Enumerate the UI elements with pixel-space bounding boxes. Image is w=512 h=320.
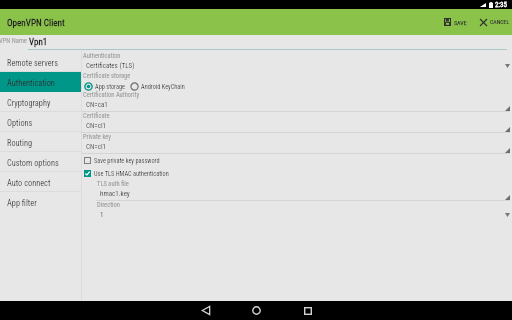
staticText: Remote servers <box>7 58 58 68</box>
staticText: App storage <box>95 83 125 90</box>
button[interactable]: Authentication <box>0 72 81 92</box>
staticText: Auto connect <box>7 178 51 188</box>
button[interactable]: Home <box>231 301 282 320</box>
staticText: App filter <box>7 198 37 208</box>
staticText: VPN Name <box>0 37 27 45</box>
staticText: OpenVPN Client <box>7 17 65 28</box>
button[interactable]: Custom options <box>0 152 81 172</box>
staticText: Certificate <box>83 112 110 120</box>
staticText: Vpn1 <box>29 37 48 48</box>
button[interactable]: Recents <box>282 301 333 320</box>
button[interactable]: Android KeyChain <box>130 82 185 91</box>
staticText: Authentication <box>83 52 121 60</box>
staticText: TLS auth file <box>97 180 129 188</box>
button[interactable]: App filter <box>0 192 81 212</box>
button[interactable]: Routing <box>0 132 81 152</box>
staticText: Save private key password <box>94 157 160 164</box>
staticText: Private key <box>83 133 111 141</box>
button[interactable]: Back <box>180 301 231 320</box>
button[interactable]: Cryptography <box>0 92 81 112</box>
button[interactable]: SAVE <box>441 14 470 30</box>
button[interactable]: CANCEL <box>477 15 512 30</box>
staticText: Android KeyChain <box>141 83 185 90</box>
staticText: Certificates (TLS) <box>86 62 135 70</box>
staticText: Certificate storage <box>83 72 131 80</box>
staticText: Cryptography <box>7 98 51 108</box>
staticText: Options <box>7 118 33 128</box>
staticText: Authentication <box>7 78 55 88</box>
button[interactable]: Auto connect <box>0 172 81 192</box>
staticText: Routing <box>7 138 33 148</box>
staticText: 1 <box>100 211 104 219</box>
staticText: Custom options <box>7 158 59 168</box>
staticText: SAVE <box>454 19 467 26</box>
staticText: Certification Authority <box>83 91 140 99</box>
staticText: CN=ca1 <box>86 101 108 109</box>
button[interactable]: Options <box>0 112 81 132</box>
button[interactable]: Remote servers <box>0 52 81 72</box>
staticText: CN=cl1 <box>86 122 106 130</box>
staticText: CANCEL <box>490 19 510 26</box>
staticText: CN=cl1 <box>86 143 106 151</box>
button[interactable]: Use TLS HMAC authentication <box>82 167 512 180</box>
staticText: Use TLS HMAC authentication <box>94 170 169 177</box>
staticText: 2:35 <box>495 1 508 9</box>
staticText: hmac1.key <box>100 190 130 198</box>
staticText: Direction <box>97 201 120 209</box>
button[interactable]: Save private key password <box>82 154 512 167</box>
button[interactable]: App storage <box>84 82 125 91</box>
